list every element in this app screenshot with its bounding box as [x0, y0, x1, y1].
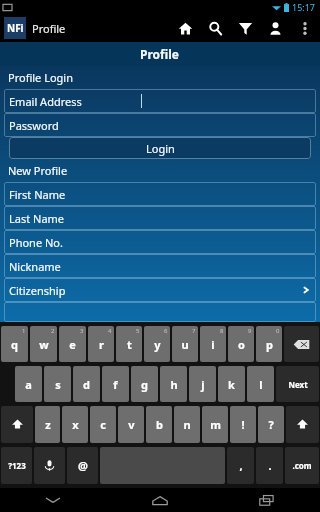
button[interactable]: ? — [258, 406, 284, 443]
staticText: 0 — [276, 327, 280, 335]
staticText: s — [55, 377, 61, 392]
staticText: @ — [78, 458, 88, 473]
button[interactable]: f — [102, 366, 129, 402]
staticText: w — [39, 337, 49, 352]
staticText: d — [83, 377, 90, 392]
staticText: r — [99, 337, 104, 352]
staticText: .com — [292, 460, 312, 471]
button[interactable]: k — [218, 366, 245, 402]
button[interactable]: Home — [106, 488, 213, 512]
button[interactable] — [4, 302, 316, 322]
button[interactable]: Shift — [286, 406, 319, 443]
staticText: Password — [9, 118, 59, 133]
staticText: NFi — [7, 21, 24, 35]
staticText: Profile Login — [8, 70, 73, 85]
button[interactable]: x — [62, 406, 88, 443]
button[interactable]: m — [202, 406, 228, 443]
button[interactable]: Citizenship — [4, 278, 316, 302]
button[interactable]: v — [118, 406, 144, 443]
staticText: First Name — [9, 187, 66, 202]
staticText: 5 — [136, 327, 140, 335]
button[interactable]: p — [256, 326, 282, 362]
staticText: b — [156, 417, 163, 432]
button[interactable]: ! — [230, 406, 256, 443]
staticText: 7 — [192, 327, 196, 335]
button[interactable]: Recent apps — [213, 488, 320, 512]
button[interactable]: Shift — [1, 406, 33, 443]
button[interactable]: Hide keyboard — [0, 488, 106, 512]
button[interactable]: Email Address — [4, 89, 316, 113]
staticText: i — [211, 337, 215, 352]
button[interactable]: . — [256, 447, 283, 484]
staticText: Login — [146, 141, 175, 156]
button[interactable]: l — [247, 366, 274, 402]
button[interactable]: More options — [290, 14, 320, 42]
staticText: c — [100, 417, 106, 432]
button[interactable]: Filter — [230, 14, 260, 42]
button[interactable]: r — [88, 326, 114, 362]
staticText: Next — [288, 379, 308, 390]
staticText: 3 — [80, 327, 84, 335]
staticText: ? — [268, 417, 274, 432]
staticText: x — [72, 417, 79, 432]
button[interactable]: Password — [4, 113, 316, 137]
button[interactable]: Login — [9, 137, 311, 159]
button[interactable]: Backspace — [284, 326, 319, 362]
button[interactable]: c — [90, 406, 116, 443]
button[interactable]: j — [189, 366, 216, 402]
button[interactable]: Account — [260, 14, 290, 42]
button[interactable]: t — [116, 326, 142, 362]
button[interactable]: Phone No. — [4, 230, 316, 254]
staticText: a — [25, 377, 32, 392]
button[interactable]: e — [59, 326, 86, 362]
staticText: e — [69, 337, 76, 352]
staticText: y — [154, 337, 161, 352]
button[interactable]: q — [1, 326, 28, 362]
button[interactable]: i — [200, 326, 226, 362]
button[interactable]: NFi logo — [4, 17, 26, 39]
staticText: f — [113, 377, 118, 392]
button[interactable]: o — [228, 326, 254, 362]
button[interactable]: a — [15, 366, 42, 402]
button[interactable]: u — [172, 326, 198, 362]
button[interactable]: Search — [200, 14, 230, 42]
button[interactable]: h — [160, 366, 187, 402]
staticText: t — [127, 337, 132, 352]
button[interactable]: y — [144, 326, 170, 362]
button[interactable]: s — [44, 366, 71, 402]
button[interactable]: First Name — [4, 182, 316, 206]
button[interactable]: n — [174, 406, 200, 443]
button[interactable]: Home — [170, 14, 200, 42]
button[interactable]: g — [131, 366, 158, 402]
staticText: z — [45, 417, 51, 432]
button[interactable]: .com — [285, 447, 319, 484]
staticText: v — [128, 417, 135, 432]
staticText: j — [201, 377, 205, 392]
button[interactable]: , — [227, 447, 254, 484]
staticText: ! — [241, 417, 245, 432]
button[interactable]: z — [35, 406, 60, 443]
staticText: 4 — [108, 327, 112, 335]
staticText: , — [239, 458, 243, 473]
button[interactable]: b — [146, 406, 172, 443]
button[interactable]: @ — [67, 447, 98, 484]
staticText: 8 — [220, 327, 224, 335]
staticText: Profile — [32, 21, 66, 36]
button[interactable]: w — [30, 326, 57, 362]
button[interactable]: ?123 — [1, 447, 32, 484]
button[interactable]: Nickname — [4, 254, 316, 278]
staticText: g — [141, 377, 148, 392]
staticText: 15:17 — [292, 1, 316, 13]
staticText: 9 — [248, 327, 252, 335]
staticText: . — [268, 458, 272, 473]
button[interactable]: d — [73, 366, 100, 402]
staticText: n — [183, 417, 191, 432]
button[interactable]: Voice input — [34, 447, 65, 484]
staticText: Email Address — [9, 94, 82, 109]
staticText: 1 — [22, 327, 26, 335]
button[interactable]: Next — [276, 366, 319, 402]
button[interactable]: Last Name — [4, 206, 316, 230]
staticText: New Profile — [8, 163, 68, 178]
staticText: 6 — [164, 327, 168, 335]
